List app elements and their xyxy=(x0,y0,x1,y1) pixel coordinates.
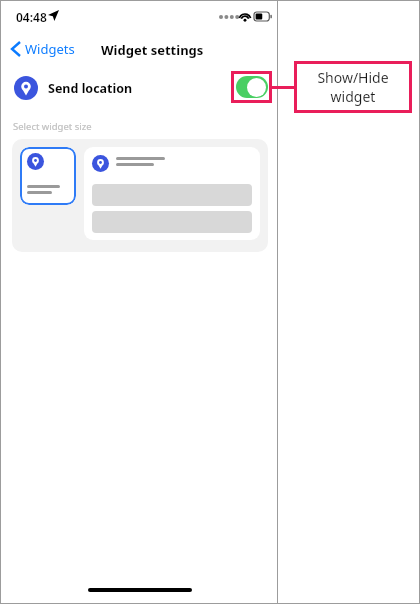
staticText: Send location xyxy=(48,80,133,97)
staticText: Show/Hide widget xyxy=(317,68,389,106)
button[interactable]: Show/Hide widget xyxy=(294,61,412,113)
staticText: Widget settings xyxy=(101,41,204,59)
button[interactable]: Large widget size xyxy=(84,147,260,240)
button[interactable]: Send location xyxy=(14,70,268,106)
staticText: Widgets xyxy=(25,40,75,58)
button[interactable]: Show or hide widget, on xyxy=(236,76,268,98)
staticText: Select widget size xyxy=(13,120,92,133)
staticText: 04:48 xyxy=(16,9,47,25)
button[interactable]: Small widget size xyxy=(20,147,76,205)
button[interactable]: Widgets xyxy=(12,38,75,60)
